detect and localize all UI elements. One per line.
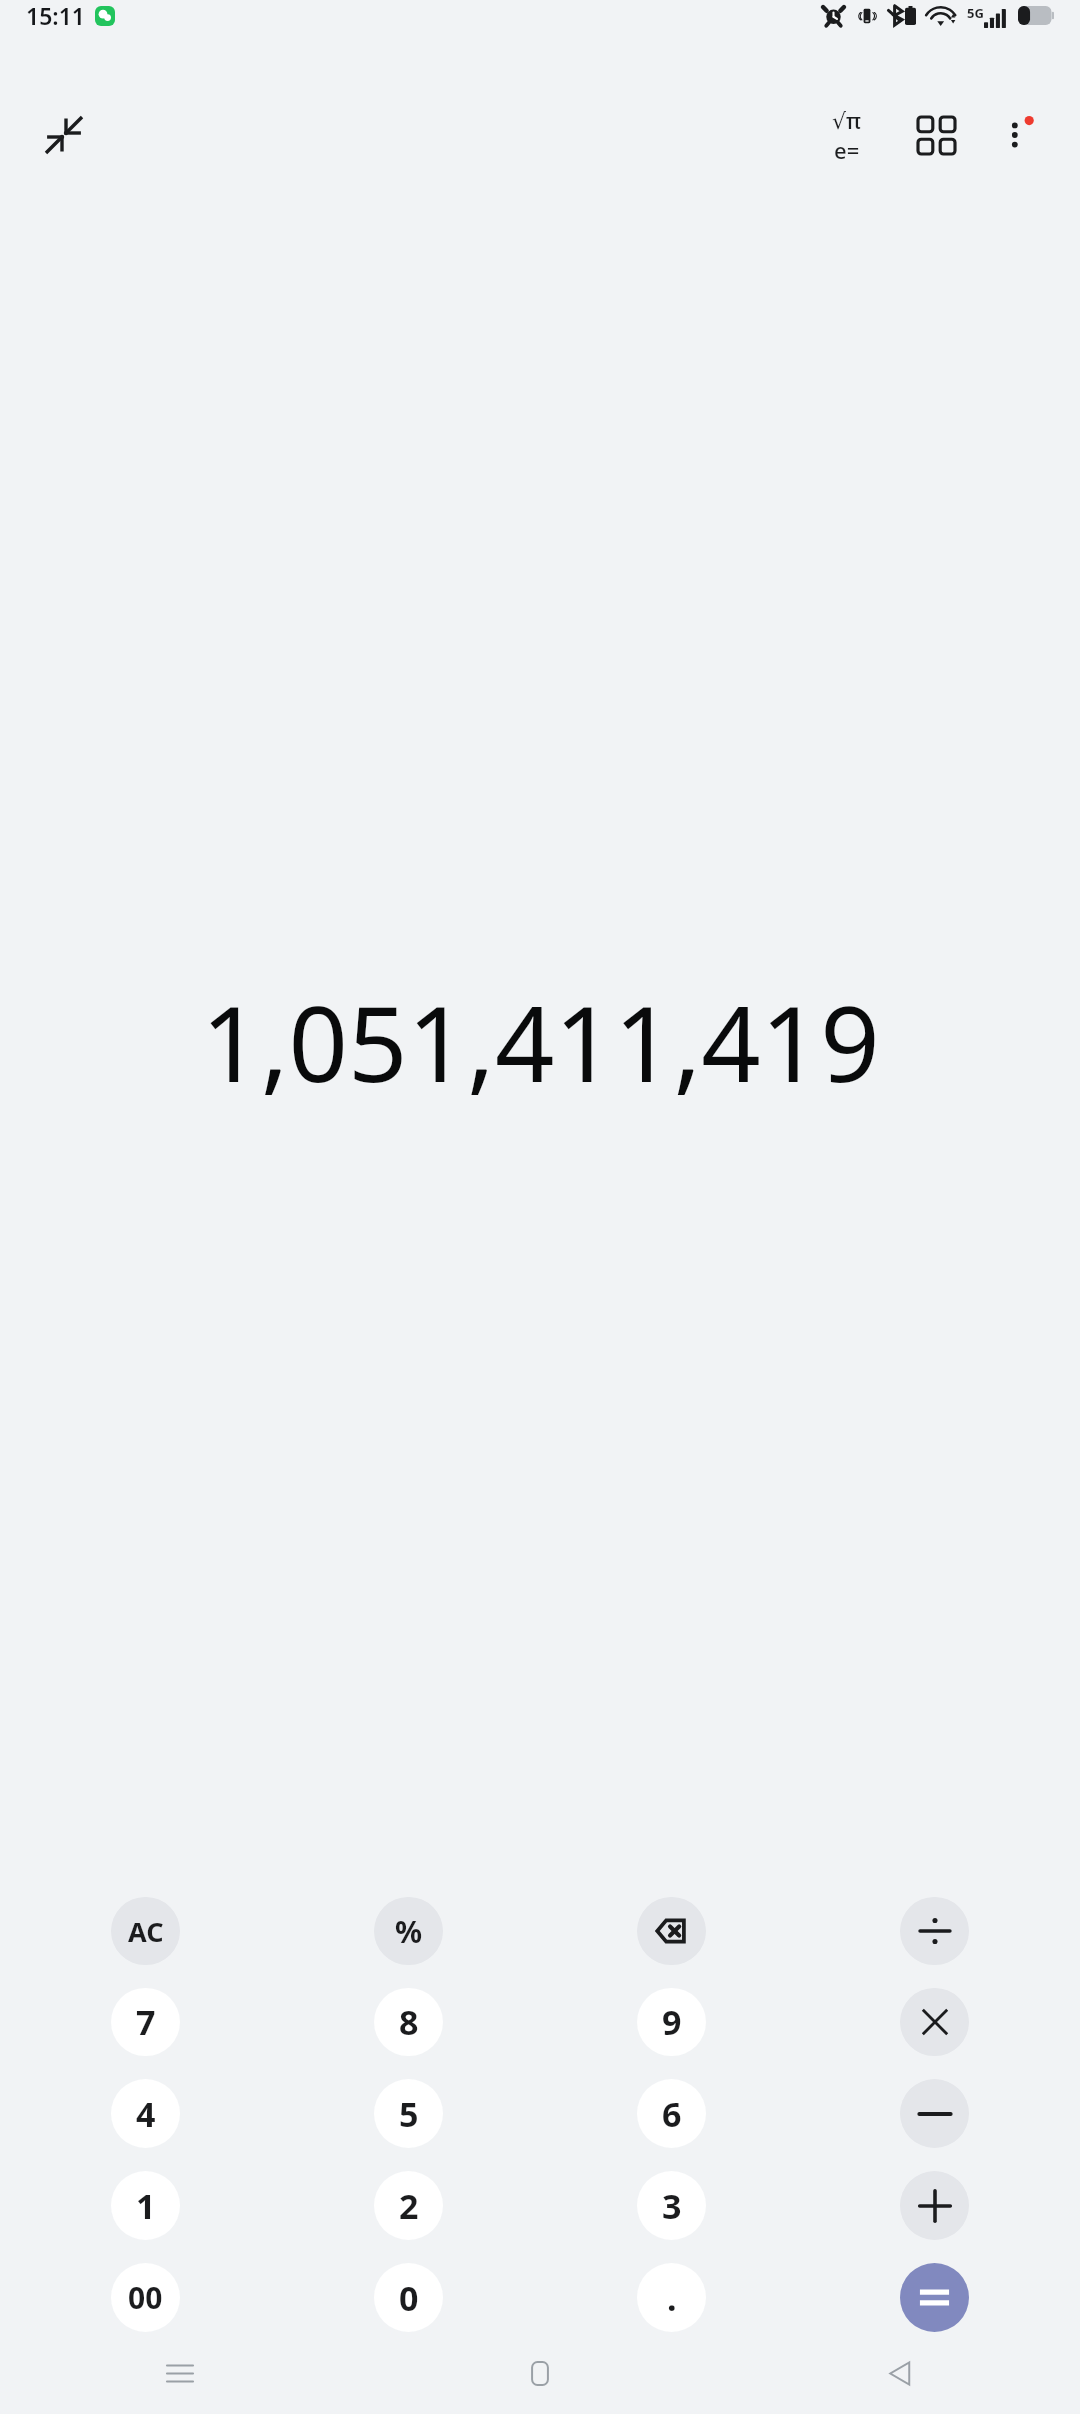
- button[interactable]: Home: [360, 2332, 720, 2414]
- button[interactable]: 5: [374, 2079, 443, 2148]
- staticText: √π: [832, 105, 861, 135]
- button[interactable]: Minus: [900, 2079, 969, 2148]
- staticText: 9: [662, 1999, 682, 2045]
- button[interactable]: Divide: [900, 1897, 969, 1965]
- button[interactable]: Multiply: [900, 1988, 969, 2056]
- staticText: AC: [128, 1913, 164, 1950]
- staticText: 00: [128, 2277, 163, 2318]
- staticText: 5G: [967, 4, 984, 22]
- button[interactable]: Backspace: [637, 1897, 706, 1965]
- staticText: 7: [136, 1999, 156, 2045]
- button[interactable]: Back: [720, 2332, 1080, 2414]
- button[interactable]: 6: [637, 2079, 706, 2148]
- button[interactable]: 9: [637, 1988, 706, 2056]
- button[interactable]: More options: [986, 103, 1050, 167]
- staticText: e=: [834, 135, 860, 165]
- button[interactable]: 7: [111, 1988, 180, 2056]
- staticText: 8: [399, 1999, 419, 2045]
- staticText: 2: [399, 2183, 419, 2229]
- button[interactable]: 0: [374, 2263, 443, 2332]
- button[interactable]: .: [637, 2263, 706, 2332]
- button[interactable]: 00: [111, 2263, 180, 2332]
- staticText: %: [395, 1911, 423, 1952]
- button[interactable]: 8: [374, 1988, 443, 2056]
- button[interactable]: 3: [637, 2171, 706, 2240]
- button[interactable]: 2: [374, 2171, 443, 2240]
- button[interactable]: Plus: [900, 2171, 969, 2240]
- button[interactable]: 4: [111, 2079, 180, 2148]
- button[interactable]: Unit converter: [900, 99, 972, 171]
- button[interactable]: Collapse: [32, 103, 96, 167]
- button[interactable]: AC: [111, 1897, 180, 1965]
- button[interactable]: Recents: [0, 2332, 360, 2414]
- staticText: 3: [662, 2183, 682, 2229]
- button[interactable]: %: [374, 1897, 443, 1965]
- button[interactable]: 1: [111, 2171, 180, 2240]
- staticText: .: [667, 2275, 677, 2321]
- button[interactable]: Equals: [900, 2263, 969, 2332]
- staticText: 1: [136, 2183, 156, 2229]
- staticText: 1,051,411,419: [201, 971, 880, 1113]
- button[interactable]: Scientific mode: [810, 99, 882, 171]
- staticText: 0: [399, 2275, 419, 2321]
- staticText: 4: [136, 2091, 156, 2137]
- staticText: 5: [399, 2091, 419, 2137]
- staticText: 15:11: [26, 0, 85, 31]
- staticText: 6: [662, 2091, 682, 2137]
